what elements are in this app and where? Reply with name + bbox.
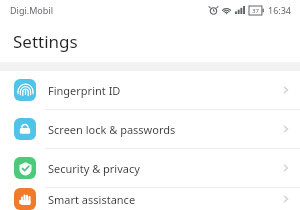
staticText: Security & privacy xyxy=(48,161,281,176)
button[interactable]: Smart assistance xyxy=(0,188,300,210)
staticText: 16:34 xyxy=(268,4,292,16)
button[interactable]: Screen lock & passwords xyxy=(0,110,300,148)
staticText: Screen lock & passwords xyxy=(48,122,281,137)
staticText: Digi.Mobil xyxy=(10,4,53,16)
button[interactable]: Security & privacy xyxy=(0,149,300,187)
staticText: 37 xyxy=(252,7,259,15)
staticText: Smart assistance xyxy=(48,192,281,207)
button[interactable]: Fingerprint ID xyxy=(0,71,300,109)
staticText: Fingerprint ID xyxy=(48,83,281,98)
staticText: Settings xyxy=(13,30,78,53)
